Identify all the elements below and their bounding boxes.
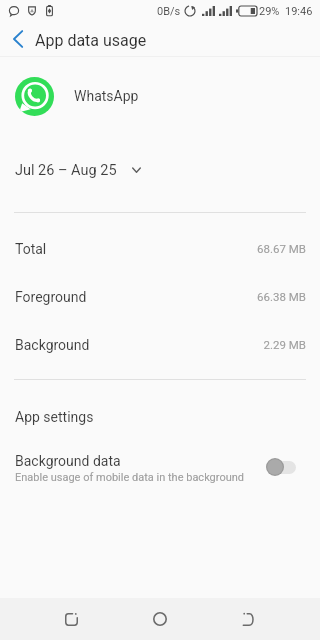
staticText: 19:46 [285, 5, 313, 18]
button[interactable]: Background data [0, 440, 320, 494]
button[interactable]: Foreground [0, 277, 320, 325]
staticText: Enable usage of mobile data in the backg… [15, 471, 245, 484]
button[interactable]: Total [0, 229, 320, 277]
staticText: 29% [259, 5, 280, 18]
staticText: WhatsApp [74, 88, 139, 104]
staticText: 68.67 MB [0, 242, 306, 255]
button[interactable]: Recent apps [47, 598, 95, 640]
staticText: Background data [15, 453, 121, 469]
staticText: App data usage [35, 31, 147, 50]
button[interactable]: Home [136, 598, 184, 640]
staticText: 66.38 MB [0, 290, 306, 303]
button[interactable]: Background [0, 325, 320, 373]
button[interactable]: Back [224, 598, 272, 640]
staticText: Jul 26 – Aug 25 [15, 162, 117, 179]
button[interactable]: WhatsApp [0, 57, 320, 137]
staticText: Total [15, 241, 47, 257]
staticText: 2.29 MB [0, 338, 306, 351]
staticText: 0B/s [157, 5, 181, 18]
staticText: Background [15, 337, 90, 353]
button[interactable]: Back [4, 25, 32, 53]
staticText: Foreground [15, 289, 87, 305]
staticText: App settings [15, 409, 94, 425]
button[interactable]: Jul 26 – Aug 25 [0, 150, 320, 194]
